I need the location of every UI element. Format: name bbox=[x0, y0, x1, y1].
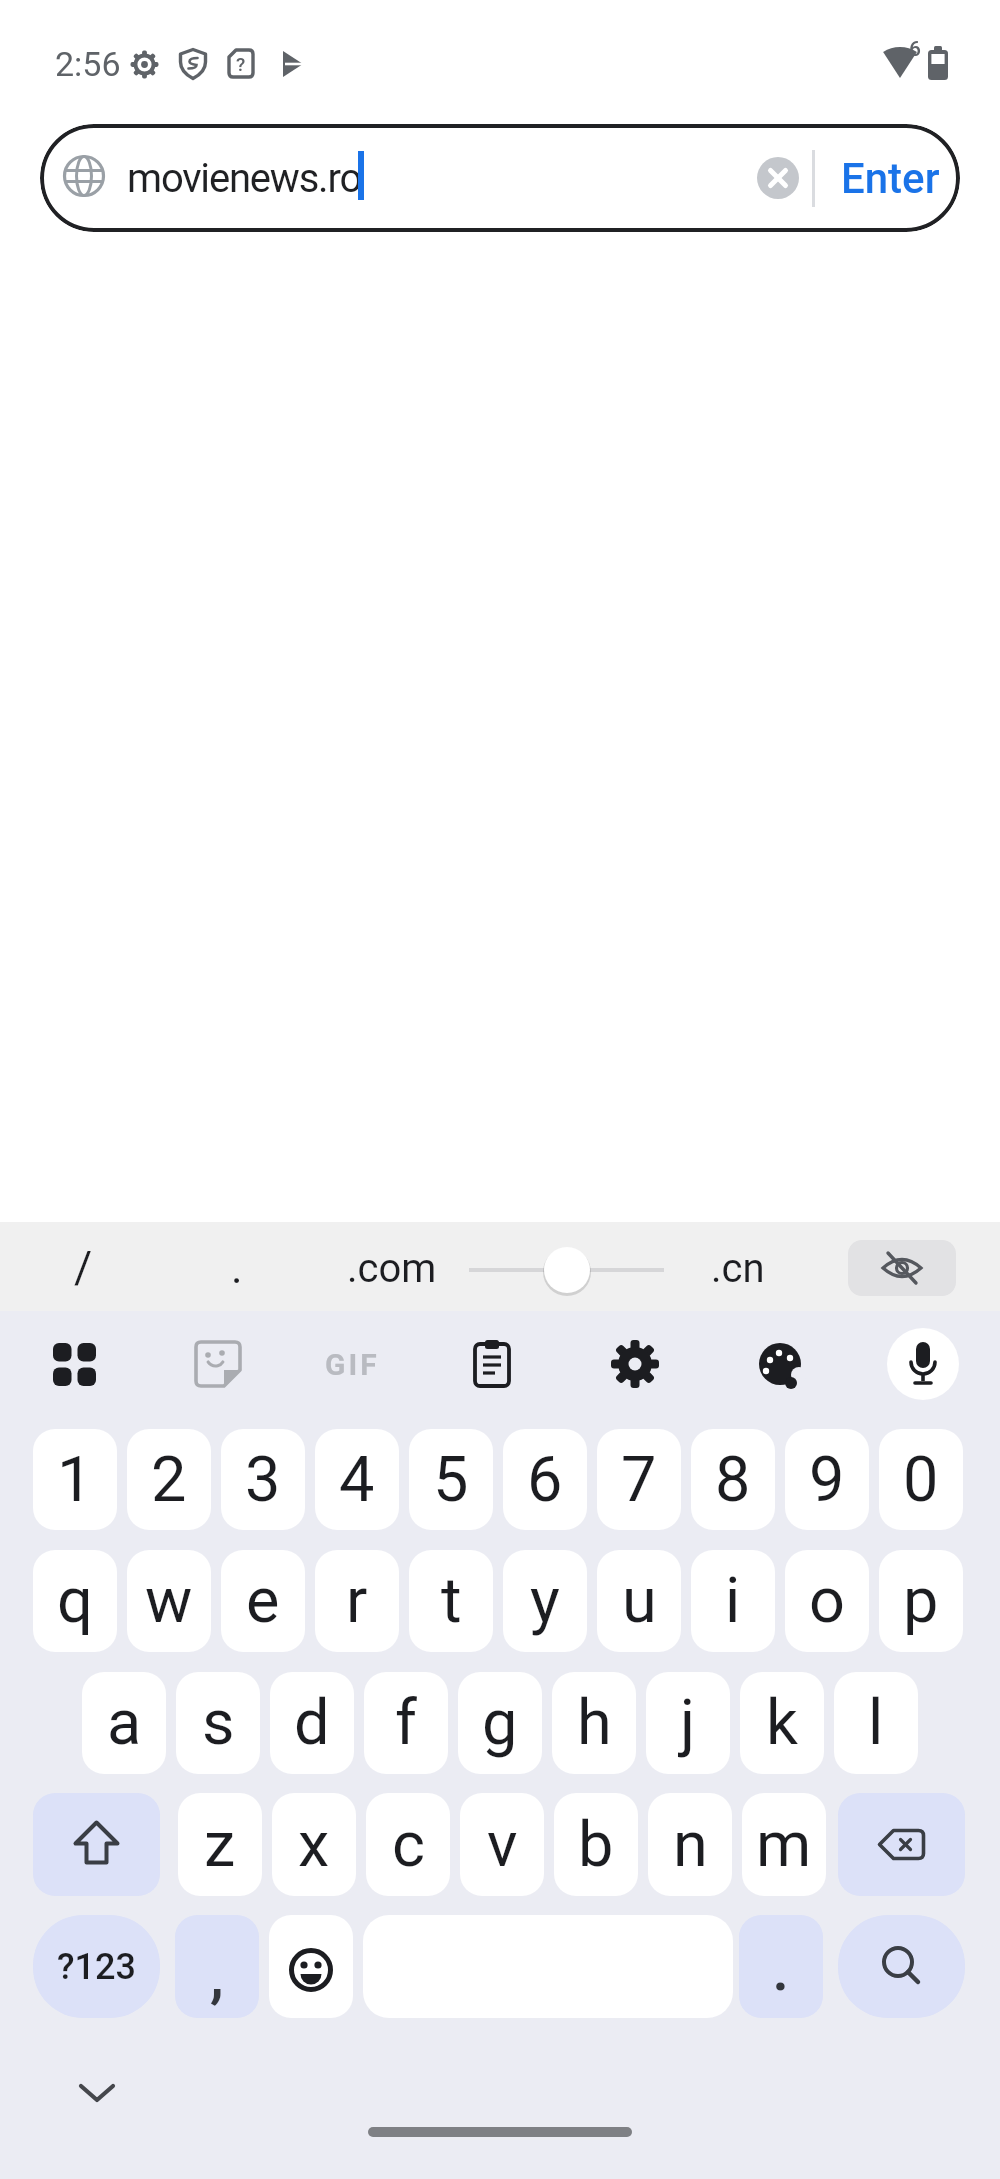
button[interactable]: n bbox=[648, 1793, 732, 1896]
button[interactable]: o bbox=[785, 1550, 869, 1652]
button[interactable]: h bbox=[552, 1672, 636, 1774]
button[interactable]: Enter bbox=[838, 152, 943, 204]
staticText: 5 bbox=[433, 1443, 469, 1517]
staticText: 6 bbox=[909, 37, 921, 61]
button[interactable]: 6 bbox=[503, 1429, 587, 1530]
staticText: e bbox=[246, 1564, 280, 1638]
button[interactable] bbox=[462, 1334, 522, 1394]
button[interactable] bbox=[838, 1793, 965, 1896]
staticText: u bbox=[622, 1564, 657, 1638]
staticText: ? bbox=[236, 53, 246, 75]
staticText: k bbox=[766, 1686, 798, 1760]
button[interactable]: 0 bbox=[879, 1429, 963, 1530]
button[interactable]: ?123 bbox=[33, 1915, 160, 2018]
button[interactable] bbox=[269, 1915, 353, 2018]
button[interactable]: r bbox=[315, 1550, 399, 1652]
staticText: 6 bbox=[527, 1443, 563, 1517]
button[interactable]: 3 bbox=[221, 1429, 305, 1530]
button[interactable]: v bbox=[460, 1793, 544, 1896]
staticText: GIF bbox=[325, 1347, 380, 1382]
button[interactable]: c bbox=[366, 1793, 450, 1896]
button[interactable]: l bbox=[834, 1672, 918, 1774]
staticText: 2 bbox=[151, 1443, 187, 1517]
button[interactable]: g bbox=[458, 1672, 542, 1774]
button[interactable] bbox=[188, 1334, 248, 1394]
button[interactable]: . bbox=[197, 1236, 277, 1300]
staticText: i bbox=[725, 1564, 741, 1638]
staticText: t bbox=[441, 1564, 462, 1638]
button[interactable]: 9 bbox=[785, 1429, 869, 1530]
staticText: s bbox=[202, 1686, 235, 1760]
staticText: z bbox=[204, 1808, 236, 1882]
staticText: / bbox=[74, 1242, 93, 1294]
staticText: x bbox=[298, 1808, 330, 1882]
button[interactable] bbox=[33, 1793, 160, 1896]
staticText: b bbox=[578, 1808, 614, 1882]
staticText: o bbox=[809, 1564, 845, 1638]
button[interactable]: 5 bbox=[409, 1429, 493, 1530]
staticText: 2:56 bbox=[55, 44, 121, 84]
button[interactable]: t bbox=[409, 1550, 493, 1652]
button[interactable]: u bbox=[597, 1550, 681, 1652]
button[interactable]: w bbox=[127, 1550, 211, 1652]
staticText: , bbox=[210, 1938, 224, 2011]
button[interactable] bbox=[605, 1334, 665, 1394]
button[interactable] bbox=[40, 124, 960, 232]
button[interactable]: y bbox=[503, 1550, 587, 1652]
staticText: d bbox=[294, 1686, 330, 1760]
button[interactable]: 7 bbox=[597, 1429, 681, 1530]
staticText: ?123 bbox=[57, 1946, 136, 1988]
button[interactable] bbox=[848, 1240, 956, 1296]
button[interactable]: 8 bbox=[691, 1429, 775, 1530]
staticText: r bbox=[346, 1564, 368, 1638]
staticText: j bbox=[680, 1686, 696, 1760]
button[interactable] bbox=[44, 1334, 104, 1394]
staticText: 4 bbox=[339, 1443, 375, 1517]
button[interactable]: i bbox=[691, 1550, 775, 1652]
button[interactable]: .com bbox=[330, 1236, 454, 1300]
staticText: g bbox=[482, 1686, 518, 1760]
button[interactable]: x bbox=[272, 1793, 356, 1896]
staticText: 9 bbox=[809, 1443, 845, 1517]
button[interactable]: f bbox=[364, 1672, 448, 1774]
button[interactable]: 4 bbox=[315, 1429, 399, 1530]
button[interactable] bbox=[739, 1915, 823, 2018]
staticText: .com bbox=[347, 1245, 437, 1292]
button[interactable]: b bbox=[554, 1793, 638, 1896]
staticText: a bbox=[107, 1686, 142, 1760]
button[interactable]: s bbox=[176, 1672, 260, 1774]
button[interactable] bbox=[887, 1328, 959, 1400]
button[interactable]: / bbox=[43, 1236, 123, 1300]
staticText: 1 bbox=[57, 1443, 93, 1517]
staticText: l bbox=[868, 1686, 884, 1760]
staticText: . bbox=[772, 1932, 790, 2005]
staticText: . bbox=[231, 1242, 243, 1294]
button[interactable]: m bbox=[742, 1793, 826, 1896]
staticText: 3 bbox=[245, 1443, 281, 1517]
button[interactable]: a bbox=[82, 1672, 166, 1774]
button[interactable] bbox=[757, 157, 799, 199]
staticText: 8 bbox=[715, 1443, 751, 1517]
button[interactable]: e bbox=[221, 1550, 305, 1652]
staticText: h bbox=[577, 1686, 612, 1760]
staticText: m bbox=[756, 1808, 812, 1882]
staticText: Enter bbox=[841, 154, 940, 203]
staticText: n bbox=[673, 1808, 708, 1882]
button[interactable]: 2 bbox=[127, 1429, 211, 1530]
staticText: movienews.ro bbox=[127, 155, 362, 202]
button[interactable] bbox=[75, 2078, 119, 2108]
button[interactable] bbox=[175, 1915, 259, 2018]
button[interactable]: z bbox=[178, 1793, 262, 1896]
button[interactable] bbox=[838, 1915, 965, 2018]
button[interactable]: p bbox=[879, 1550, 963, 1652]
button[interactable]: GIF bbox=[312, 1334, 392, 1394]
button[interactable]: q bbox=[33, 1550, 117, 1652]
button[interactable]: j bbox=[646, 1672, 730, 1774]
button[interactable]: 1 bbox=[33, 1429, 117, 1530]
button[interactable] bbox=[750, 1334, 810, 1394]
button[interactable]: k bbox=[740, 1672, 824, 1774]
button[interactable]: d bbox=[270, 1672, 354, 1774]
button[interactable]: .cn bbox=[676, 1236, 800, 1300]
staticText: 7 bbox=[621, 1443, 657, 1517]
